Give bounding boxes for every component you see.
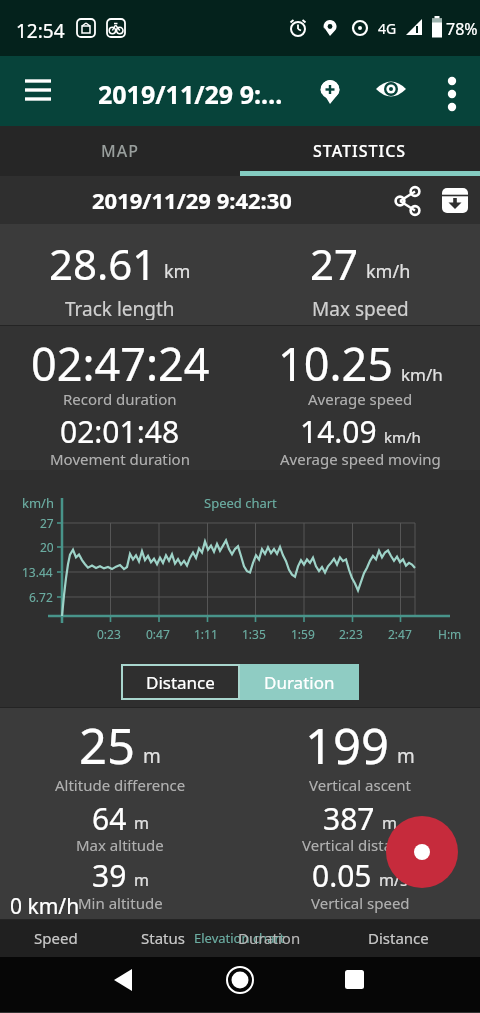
staticText: Vertical speed	[311, 893, 410, 913]
staticText: km	[164, 259, 191, 284]
staticText: 25	[79, 712, 136, 779]
staticText: m	[382, 812, 397, 834]
button[interactable]: Duration	[240, 664, 359, 700]
button[interactable]	[394, 187, 422, 215]
staticText: km/h	[22, 494, 54, 512]
staticText: 10.25	[278, 333, 394, 394]
staticText: m	[143, 743, 161, 769]
staticText: m/s	[379, 869, 408, 891]
staticText: km/h	[366, 259, 411, 284]
staticText: 6.72	[29, 589, 53, 605]
staticText: 28.61	[49, 235, 157, 292]
staticText: 387	[323, 798, 375, 839]
staticText: STATISTICS	[313, 140, 407, 162]
button[interactable]: Distance	[121, 664, 240, 700]
staticText: Min altitude	[78, 893, 163, 913]
staticText: Elevation chart	[194, 929, 285, 947]
staticText: 2019/11/29 9:…	[98, 77, 283, 111]
staticText: 0:23	[97, 626, 121, 642]
staticText: 27	[310, 235, 359, 292]
staticText: H:m	[438, 626, 462, 642]
staticText: Duration	[264, 671, 335, 694]
staticText: 1:11	[194, 626, 218, 642]
staticText: 1:35	[242, 626, 266, 642]
button[interactable]	[111, 968, 135, 992]
staticText: 0.05	[312, 855, 372, 896]
staticText: 64	[92, 798, 127, 839]
staticText: Average speed moving	[280, 449, 441, 469]
button[interactable]	[345, 970, 364, 989]
staticText: 2:23	[339, 626, 363, 642]
staticText: Duration	[238, 928, 301, 948]
staticText: 13.44	[22, 564, 53, 580]
button[interactable]	[386, 816, 458, 888]
staticText: Status	[141, 928, 185, 948]
staticText: Max speed	[312, 296, 409, 320]
staticText: Vertical distance	[302, 835, 418, 855]
staticText: 12:54	[16, 18, 65, 44]
staticText: Record duration	[63, 389, 177, 409]
button[interactable]	[441, 187, 469, 215]
button[interactable]	[24, 78, 52, 106]
staticText: 02:01:48	[60, 411, 180, 452]
staticText: Max altitude	[76, 835, 164, 855]
staticText: 2:47	[388, 626, 412, 642]
staticText: km/h	[384, 427, 421, 447]
staticText: 199	[305, 712, 390, 779]
staticText: Distance	[368, 928, 429, 948]
staticText: 14.09	[300, 411, 377, 452]
staticText: Speed	[34, 928, 78, 948]
staticText: 39	[92, 855, 127, 896]
staticText: 78%	[446, 18, 478, 40]
staticText: Distance	[146, 671, 215, 694]
staticText: 0:47	[146, 626, 170, 642]
staticText: 1:59	[291, 626, 315, 642]
staticText: m	[134, 869, 149, 891]
staticText: Movement duration	[50, 449, 190, 469]
staticText: Track length	[65, 296, 175, 320]
staticText: 0 km/h	[10, 892, 80, 921]
staticText: Altitude difference	[55, 775, 186, 795]
button[interactable]	[226, 966, 254, 994]
staticText: 02:47:24	[31, 333, 210, 394]
staticText: m	[134, 812, 149, 834]
button[interactable]	[316, 78, 344, 106]
staticText: MAP	[101, 140, 139, 162]
staticText: m	[397, 743, 415, 769]
staticText: 27	[40, 515, 54, 531]
button[interactable]	[375, 80, 407, 112]
staticText: Vertical ascent	[309, 775, 411, 795]
staticText: 20	[40, 539, 54, 555]
staticText: Average speed	[308, 389, 413, 409]
staticText: km/h	[401, 363, 443, 386]
staticText: Speed chart	[204, 494, 277, 512]
button[interactable]: STATISTICS	[240, 126, 480, 176]
staticText: 4G	[378, 19, 397, 38]
button[interactable]: MAP	[0, 126, 240, 176]
staticText: 2019/11/29 9:42:30	[92, 185, 292, 215]
button[interactable]	[438, 76, 466, 104]
